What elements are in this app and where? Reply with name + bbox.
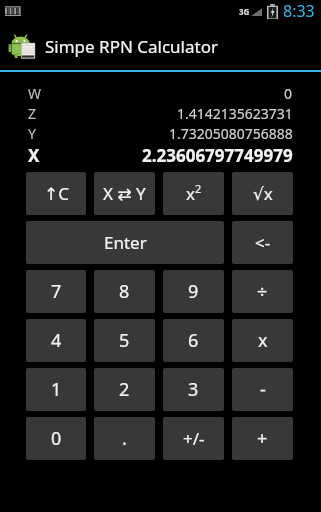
button[interactable]: . (94, 417, 155, 460)
staticText: 9 (188, 279, 199, 304)
button[interactable]: X ⇄ Y (94, 172, 155, 215)
button[interactable]: x (163, 172, 224, 215)
staticText: 3 (188, 377, 199, 402)
staticText: W (28, 84, 42, 103)
button[interactable]: + (232, 417, 293, 460)
staticText: 2 (119, 377, 130, 402)
staticText: 1.73205080756888 (169, 124, 293, 143)
staticText: Enter (104, 231, 147, 254)
button[interactable]: 2 (94, 368, 155, 411)
staticText: x (258, 328, 268, 353)
staticText: Y (28, 124, 36, 143)
staticText: 6 (188, 328, 199, 353)
button[interactable]: ↑C (26, 172, 86, 215)
button[interactable]: x (232, 319, 293, 362)
staticText: 1.4142135623731 (177, 104, 293, 123)
staticText: 0 (284, 84, 293, 103)
button[interactable]: 6 (163, 319, 224, 362)
staticText: <- (255, 231, 271, 254)
staticText: 0 (51, 426, 62, 451)
staticText: x (186, 182, 195, 205)
button[interactable]: 1 (26, 368, 86, 411)
button[interactable]: √x (232, 172, 293, 215)
button[interactable]: Enter (26, 221, 224, 264)
button[interactable]: <- (232, 221, 293, 264)
button[interactable]: 4 (26, 319, 86, 362)
staticText: 1 (51, 377, 62, 402)
staticText: 2 (195, 181, 202, 196)
staticText: 3G (239, 6, 250, 17)
button[interactable]: - (232, 368, 293, 411)
staticText: 7 (51, 279, 62, 304)
button[interactable]: 5 (94, 319, 155, 362)
button[interactable]: 0 (26, 417, 86, 460)
staticText: 2.23606797749979 (142, 144, 293, 167)
button[interactable]: 7 (26, 270, 86, 313)
button[interactable]: ÷ (232, 270, 293, 313)
staticText: . (122, 426, 127, 451)
staticText: √x (253, 182, 273, 205)
staticText: - (260, 377, 266, 402)
staticText: 4 (51, 328, 62, 353)
button[interactable]: 8 (94, 270, 155, 313)
button[interactable]: 3 (163, 368, 224, 411)
other: App icon (8, 31, 38, 61)
button[interactable]: 9 (163, 270, 224, 313)
staticText: Simpe RPN Calculator (45, 35, 218, 58)
staticText: X (28, 144, 40, 167)
staticText: + (257, 426, 268, 451)
staticText: 8:33 (283, 0, 315, 22)
staticText: ↑C (44, 182, 69, 205)
staticText: 8 (119, 279, 130, 304)
staticText: +/- (183, 427, 205, 450)
button[interactable]: +/- (163, 417, 224, 460)
staticText: ÷ (257, 279, 268, 304)
staticText: X ⇄ Y (103, 182, 146, 205)
staticText: 5 (119, 328, 130, 353)
staticText: Z (28, 104, 37, 123)
